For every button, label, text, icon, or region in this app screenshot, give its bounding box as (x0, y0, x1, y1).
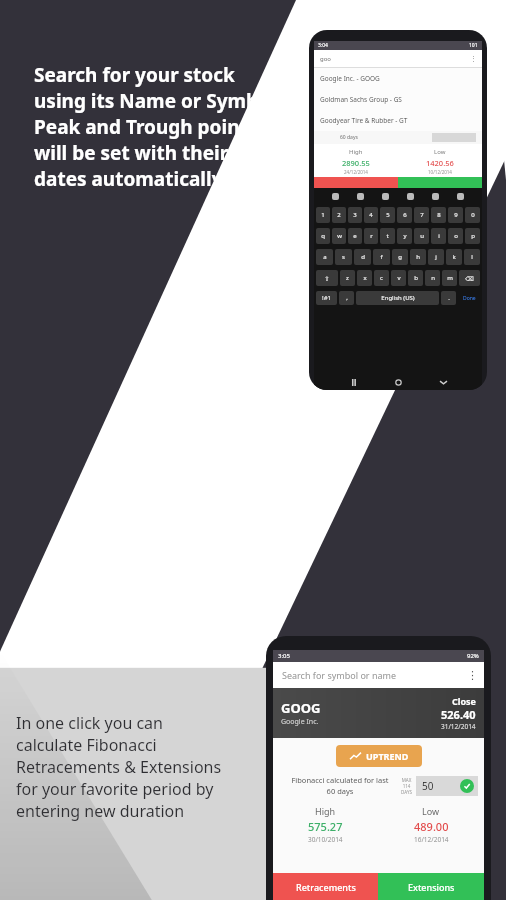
staticText: using its Name or Symbol, (34, 88, 282, 114)
staticText: z (346, 274, 349, 282)
button[interactable]: u (414, 228, 429, 244)
button[interactable]: ⌫ (459, 270, 480, 286)
staticText: dates automatically. (34, 166, 228, 192)
button[interactable]: !#1 (316, 291, 337, 305)
button[interactable]: 0 (465, 207, 480, 223)
staticText: Fibonacci calculated for last 60 days (279, 775, 401, 796)
button[interactable]: j (428, 249, 444, 265)
staticText: 0 (471, 211, 475, 219)
staticText: Search for symbol or name (282, 669, 396, 681)
button[interactable]: s (335, 249, 352, 265)
button[interactable]: Retracements (273, 873, 378, 900)
staticText: 10/12/2014 (428, 169, 452, 175)
button[interactable]: o (448, 228, 463, 244)
button[interactable]: f (373, 249, 390, 265)
staticText: calculate Fibonacci (16, 734, 157, 756)
staticText: 16/12/2014 (414, 835, 449, 844)
button[interactable]: c (374, 270, 389, 286)
staticText: Peak and Trough points (34, 114, 258, 140)
button[interactable]: b (408, 270, 423, 286)
staticText: 2890.55 (342, 158, 370, 168)
button[interactable]: Extensions (378, 873, 484, 900)
staticText: ⋮ (470, 55, 477, 63)
button[interactable]: i (431, 228, 446, 244)
button[interactable]: ⇧ (316, 270, 338, 286)
button[interactable]: e (348, 228, 362, 244)
button[interactable]: 5 (380, 207, 395, 223)
button[interactable]: English (US) (356, 291, 439, 305)
button[interactable]: More options (467, 669, 478, 682)
button[interactable]: 4 (364, 207, 378, 223)
staticText: q (321, 232, 325, 240)
staticText: entering new duration (16, 800, 185, 822)
button[interactable]: g (392, 249, 408, 265)
button[interactable]: r (364, 228, 378, 244)
staticText: Low (422, 805, 440, 817)
button[interactable]: 8 (431, 207, 446, 223)
button[interactable]: w (332, 228, 346, 244)
staticText: k (452, 253, 456, 261)
staticText: Google Inc. - GOOG (320, 74, 380, 83)
button[interactable]: 50 (416, 776, 478, 796)
staticText: m (447, 274, 453, 282)
staticText: Extensions (408, 881, 455, 893)
button[interactable]: Google Inc. - GOOG (314, 68, 482, 89)
button[interactable]: k (446, 249, 462, 265)
button[interactable]: q (316, 228, 330, 244)
staticText: English (US) (381, 294, 415, 302)
button[interactable]: 2 (332, 207, 346, 223)
button[interactable]: n (425, 270, 440, 286)
button[interactable]: 7 (414, 207, 429, 223)
staticText: High (349, 148, 363, 156)
button[interactable]: t (380, 228, 395, 244)
staticText: Retracements (296, 881, 356, 893)
button[interactable]: 3 (348, 207, 362, 223)
button[interactable]: 1 (316, 207, 330, 223)
staticText: MAX 114 DAYS (401, 777, 412, 795)
button[interactable]: , (339, 291, 354, 305)
button[interactable]: z (340, 270, 355, 286)
button[interactable]: down (437, 376, 449, 388)
staticText: e (353, 232, 357, 240)
staticText: d (361, 253, 365, 261)
staticText: In one click you can (16, 712, 163, 734)
button[interactable]: d (354, 249, 371, 265)
button[interactable]: UPTREND (336, 745, 422, 767)
button[interactable]: Goodyear Tire & Rubber - GT (314, 110, 482, 131)
button[interactable]: home (392, 376, 404, 388)
button[interactable]: 6 (397, 207, 412, 223)
button[interactable]: l (464, 249, 480, 265)
staticText: 489.00 (414, 819, 449, 834)
button[interactable]: h (410, 249, 426, 265)
staticText: 6 (403, 211, 407, 219)
staticText: 3:05 (278, 652, 290, 660)
staticText: v (397, 274, 401, 282)
button[interactable]: Goldman Sachs Group - GS (314, 89, 482, 110)
staticText: 30/10/2014 (308, 835, 343, 844)
staticText: , (346, 294, 348, 302)
button[interactable]: x (357, 270, 372, 286)
button[interactable]: y (397, 228, 412, 244)
staticText: g (398, 253, 402, 261)
staticText: 9 (454, 211, 458, 219)
staticText: 50 (422, 779, 434, 793)
button[interactable]: a (316, 249, 333, 265)
staticText: l (471, 253, 473, 261)
staticText: r (370, 232, 373, 240)
button[interactable]: m (442, 270, 457, 286)
staticText: 31/12/2014 (441, 722, 476, 731)
staticText: i (438, 232, 440, 240)
button[interactable]: back (347, 376, 359, 388)
button[interactable]: . (441, 291, 456, 305)
staticText: 7 (420, 211, 424, 219)
staticText: . (448, 294, 450, 302)
button[interactable]: Search for symbol or name (273, 662, 484, 688)
staticText: y (403, 232, 407, 240)
button[interactable]: v (391, 270, 406, 286)
staticText: 5 (386, 211, 390, 219)
button[interactable]: p (465, 228, 480, 244)
button[interactable]: Apply (460, 779, 474, 793)
button[interactable]: 9 (448, 207, 463, 223)
